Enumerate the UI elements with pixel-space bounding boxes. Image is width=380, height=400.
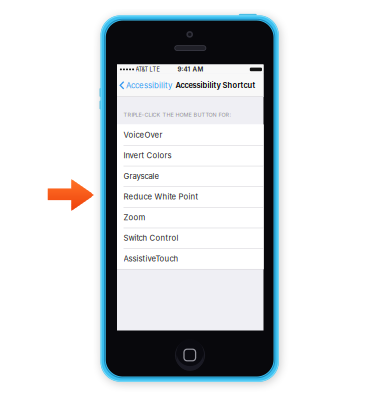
staticText: 9:41 AM [177, 65, 203, 73]
staticText: Invert Colors [123, 151, 171, 160]
button[interactable]: AssistiveTouch [117, 248, 263, 269]
staticText: TRIPLE-CLICK THE HOME BUTTON FOR: [123, 111, 231, 118]
staticText: Accessibility Shortcut [175, 81, 255, 90]
staticText: Zoom [123, 213, 145, 222]
staticText: Accessibility [126, 80, 172, 90]
button[interactable]: Invert Colors [117, 145, 263, 166]
button[interactable]: Grayscale [117, 166, 263, 186]
staticText: AssistiveTouch [123, 254, 178, 263]
button[interactable]: VoiceOver [117, 124, 263, 145]
staticText: VoiceOver [123, 130, 162, 139]
button[interactable]: Reduce White Point [117, 186, 263, 207]
staticText: Switch Control [123, 233, 178, 243]
button[interactable]: Zoom [117, 207, 263, 228]
staticText: AT&T [136, 66, 149, 73]
button[interactable]: Accessibility [119, 74, 175, 97]
staticText: LTE [150, 66, 160, 73]
button[interactable]: Switch Control [117, 228, 263, 248]
staticText: Reduce White Point [123, 192, 198, 201]
staticText: Grayscale [123, 171, 159, 181]
